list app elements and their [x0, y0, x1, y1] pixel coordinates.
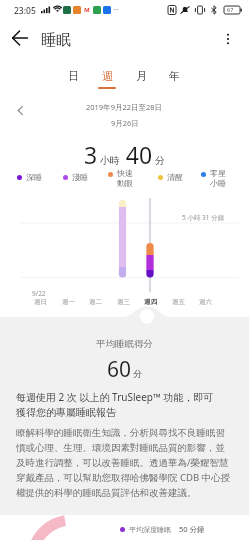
- staticText: 9月26日: [111, 118, 139, 128]
- staticText: 2019年9月22日至28日: [86, 102, 163, 112]
- staticText: 週三: [117, 298, 130, 306]
- staticText: 週一: [62, 298, 75, 306]
- staticText: 平均睡眠得分: [96, 338, 153, 350]
- staticText: 小睡: [210, 178, 226, 188]
- button[interactable]: 年: [160, 64, 188, 94]
- staticText: 月: [136, 69, 147, 83]
- staticText: 瞭解科學的睡眠衛生知識，分析與尋找不良睡眠習慣或心理、生理、環境因素對睡眠品質的…: [16, 427, 232, 499]
- staticText: 60 分: [107, 355, 143, 384]
- button[interactable]: 週四: [139, 298, 161, 306]
- button[interactable]: 淺睡: [63, 172, 88, 182]
- button[interactable]: 日: [59, 64, 87, 94]
- staticText: 50 分鐘: [179, 524, 205, 534]
- button[interactable]: 週一: [57, 298, 79, 306]
- staticText: 動眼: [117, 178, 133, 188]
- button[interactable]: 週六: [194, 298, 216, 306]
- button[interactable]: Back: [7, 25, 33, 51]
- staticText: 快速: [117, 168, 133, 178]
- button[interactable]: 零星: [201, 168, 226, 188]
- staticText: 平均深度睡眠: [129, 525, 171, 534]
- staticText: 週二: [89, 298, 102, 306]
- staticText: 深睡: [26, 172, 42, 182]
- staticText: 週六: [199, 298, 212, 306]
- button[interactable]: 月: [127, 64, 155, 94]
- staticText: 9/22: [32, 289, 46, 298]
- button[interactable]: Previous week: [8, 98, 32, 122]
- button[interactable]: 深睡: [17, 172, 42, 182]
- staticText: 5 小時 31 分鐘: [182, 213, 225, 222]
- staticText: 週日: [34, 298, 47, 306]
- button[interactable]: 快速: [108, 168, 133, 188]
- button[interactable]: 清醒: [158, 172, 183, 182]
- staticText: 週四: [144, 298, 157, 306]
- staticText: 零星: [210, 168, 226, 178]
- button[interactable]: 週三: [112, 298, 134, 306]
- staticText: 週: [102, 69, 113, 83]
- staticText: 睡眠: [41, 31, 71, 50]
- staticText: 23:05: [14, 5, 36, 17]
- button[interactable]: 週日: [29, 298, 51, 306]
- staticText: 67: [227, 6, 234, 13]
- staticText: 日: [68, 69, 79, 83]
- staticText: 每週使用 2 次 以上的 TruSleep™ 功能，即可 獲得您的專屬睡眠報告: [16, 390, 236, 419]
- staticText: ···: [113, 5, 119, 15]
- staticText: 淺睡: [72, 172, 88, 182]
- staticText: M: [84, 6, 90, 14]
- button[interactable]: 週二: [84, 298, 106, 306]
- staticText: 清醒: [167, 172, 183, 182]
- button[interactable]: More options: [215, 26, 241, 52]
- staticText: 週五: [172, 298, 185, 306]
- button[interactable]: 週: [93, 64, 121, 94]
- button[interactable]: 週五: [167, 298, 189, 306]
- staticText: 年: [169, 69, 180, 83]
- staticText: 3 小時 40 分: [84, 139, 165, 170]
